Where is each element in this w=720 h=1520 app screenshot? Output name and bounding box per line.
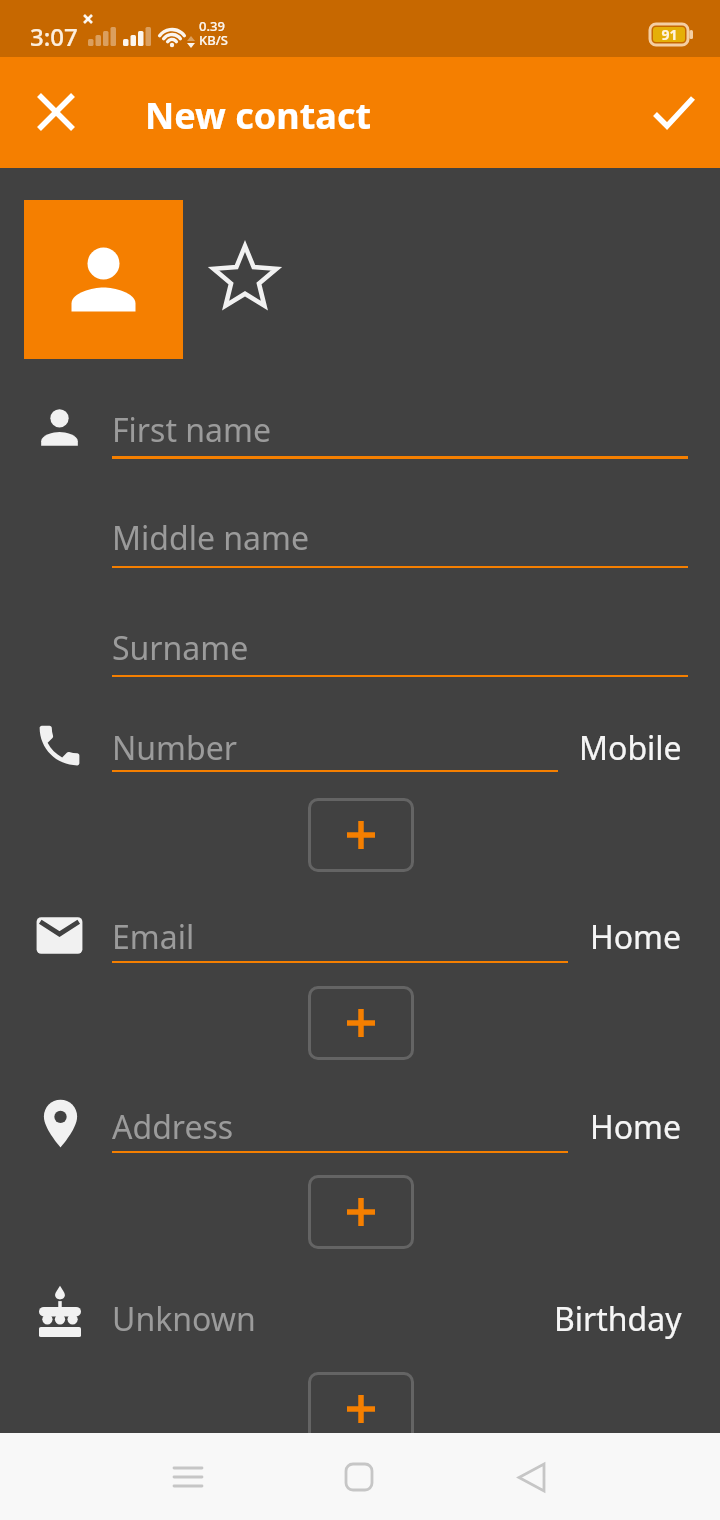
button[interactable]: Middle name [112,516,688,568]
staticText: 3:07 [30,20,78,53]
button[interactable]: Unknown [112,1297,688,1341]
button[interactable] [308,986,414,1060]
staticText: Email [112,915,195,959]
button[interactable] [210,243,280,313]
button[interactable]: Email [112,915,568,963]
staticText: Home [590,1105,682,1149]
staticText: Number [112,726,237,770]
staticText: New contact [145,91,372,140]
button[interactable] [30,86,82,138]
staticText: Unknown [112,1297,256,1341]
button[interactable] [160,1449,216,1505]
staticText: Home [590,915,682,959]
button[interactable]: First name [112,408,688,459]
staticText: 0.39 [199,17,225,35]
button[interactable] [308,798,414,872]
button[interactable] [503,1449,559,1505]
button[interactable] [24,200,183,359]
staticText: KB/S [199,31,228,49]
button[interactable]: Number [112,726,558,772]
staticText: Birthday [554,1297,682,1341]
button[interactable] [308,1175,414,1249]
staticText: Mobile [579,726,682,770]
button[interactable]: Surname [112,626,688,677]
button[interactable] [308,1372,414,1446]
staticText: Surname [112,626,249,670]
staticText: First name [112,408,271,452]
button[interactable]: Address [112,1105,568,1153]
staticText: Address [112,1105,234,1149]
button[interactable] [648,86,700,138]
staticText: Middle name [112,516,309,560]
button[interactable] [331,1449,387,1505]
staticText: 91 [661,25,678,44]
